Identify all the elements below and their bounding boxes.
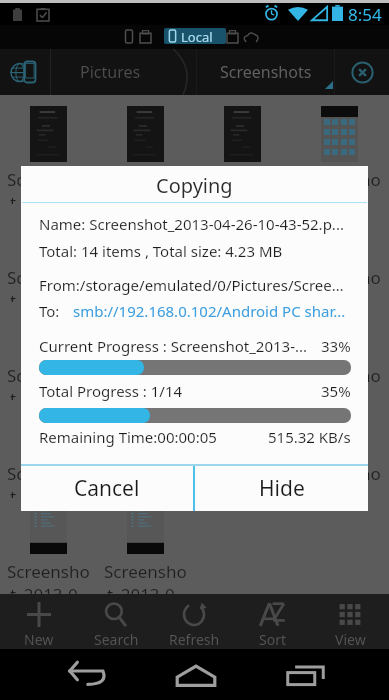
staticText: Screensho xyxy=(7,168,90,191)
button[interactable]: Screensho xyxy=(194,106,291,204)
staticText: t_2013-0.. xyxy=(301,387,378,400)
button[interactable]: Network devices xyxy=(0,49,50,95)
staticText: Screensho xyxy=(7,266,90,289)
staticText: Sort xyxy=(259,630,286,649)
staticText: Pictures xyxy=(80,61,141,83)
staticText: t_2013-0.. xyxy=(10,191,87,204)
button[interactable]: Recent apps xyxy=(281,654,330,696)
staticText: t_2013-0.. xyxy=(107,485,184,498)
button[interactable]: Screensho xyxy=(97,204,194,302)
staticText: Screensho xyxy=(104,168,187,191)
button[interactable]: Screensho xyxy=(291,302,388,400)
button[interactable]: Screensho xyxy=(0,204,97,302)
staticText: Search xyxy=(94,630,139,649)
staticText: Screensho xyxy=(298,266,381,289)
staticText: Hide xyxy=(259,474,305,503)
button[interactable]: Cloud xyxy=(243,32,259,42)
staticText: Screensho xyxy=(7,560,90,583)
staticText: Screensho xyxy=(104,364,187,387)
button[interactable]: Screensho xyxy=(194,302,291,400)
staticText: t_2013-0.. xyxy=(10,485,87,498)
staticText: Refresh xyxy=(169,630,220,649)
button[interactable]: Screensho xyxy=(97,106,194,204)
button[interactable]: Search xyxy=(77,594,155,649)
button[interactable]: Screensho xyxy=(97,302,194,400)
staticText: 33% xyxy=(321,336,351,356)
staticText: 35% xyxy=(321,381,351,401)
button[interactable]: Screensho xyxy=(194,400,291,498)
staticText: Screensho xyxy=(298,168,381,191)
staticText: t_2013-0.. xyxy=(301,485,378,498)
button[interactable]: Screenshots xyxy=(197,49,334,95)
button[interactable]: View xyxy=(311,594,389,649)
staticText: Copying xyxy=(156,172,233,199)
button[interactable]: Close xyxy=(335,49,389,95)
button[interactable]: Sort xyxy=(233,594,311,649)
staticText: t_2013-0.. xyxy=(301,191,378,204)
button[interactable]: Screensho xyxy=(291,204,388,302)
staticText: Name: Screenshot_2013-04-26-10-43-52.p..… xyxy=(39,214,351,234)
staticText: To: xyxy=(39,301,60,321)
button[interactable]: Screensho xyxy=(97,400,194,498)
staticText: New xyxy=(24,630,54,649)
button[interactable]: Screensho xyxy=(291,106,388,204)
button[interactable]: Screensho xyxy=(291,400,388,498)
staticText: t_2013-0.. xyxy=(107,191,184,204)
staticText: From:/storage/emulated/0/Pictures/Screen… xyxy=(39,275,351,295)
staticText: Screensho xyxy=(201,168,284,191)
staticText: t_2013-0.. xyxy=(301,289,378,302)
staticText: Screensho xyxy=(298,462,381,485)
staticText: Screensho xyxy=(201,266,284,289)
staticText: Total Progress : 1/14 xyxy=(39,381,321,401)
staticText: Screenshots xyxy=(220,61,312,83)
staticText: Screensho xyxy=(104,266,187,289)
button[interactable]: Back xyxy=(61,654,110,696)
staticText: Screensho xyxy=(298,364,381,387)
button[interactable]: Pictures xyxy=(51,49,170,95)
staticText: t_2013-0.. xyxy=(107,387,184,400)
staticText: 8:54 xyxy=(348,3,382,26)
button[interactable]: SD card xyxy=(140,30,151,43)
button[interactable]: Cancel xyxy=(21,466,193,511)
staticText: t_2013-0.. xyxy=(107,289,184,302)
staticText: View xyxy=(335,630,366,649)
staticText: t_2013-0.. xyxy=(204,289,281,302)
button[interactable]: Screensho xyxy=(194,204,291,302)
button[interactable]: New xyxy=(0,594,77,649)
staticText: smb://192.168.0.102/Android PC shar... xyxy=(73,301,351,321)
staticText: Screensho xyxy=(104,462,187,485)
staticText: t_2013-0.. xyxy=(10,387,87,400)
staticText: t_2013-0.. xyxy=(204,485,281,498)
button[interactable]: Screensho xyxy=(97,498,194,594)
button[interactable]: Hide xyxy=(195,466,368,511)
button[interactable]: Local xyxy=(164,28,226,44)
button[interactable]: Phone storage xyxy=(124,30,134,43)
staticText: Cancel xyxy=(74,474,140,503)
staticText: Screensho xyxy=(7,462,90,485)
staticText: Screensho xyxy=(201,462,284,485)
staticText: t_2013-0.. xyxy=(107,583,184,594)
staticText: t_2013-0.. xyxy=(10,289,87,302)
button[interactable]: Screensho xyxy=(0,400,97,498)
button[interactable]: Network xyxy=(227,30,238,43)
staticText: Remaining Time:00:00:05 xyxy=(39,427,268,447)
staticText: Local xyxy=(181,28,213,44)
staticText: t_2013-0.. xyxy=(10,583,87,594)
staticText: Total: 14 items , Total size: 4.23 MB xyxy=(39,241,283,261)
button[interactable]: Home xyxy=(171,654,220,696)
staticText: Screensho xyxy=(201,364,284,387)
button[interactable]: Screensho xyxy=(0,106,97,204)
button[interactable]: Screensho xyxy=(0,498,97,594)
staticText: Screensho xyxy=(7,364,90,387)
button[interactable]: Screensho xyxy=(0,302,97,400)
button[interactable]: Refresh xyxy=(155,594,233,649)
staticText: 515.32 KB/s xyxy=(268,427,351,447)
staticText: t_2013-0.. xyxy=(204,191,281,204)
staticText: Screensho xyxy=(104,560,187,583)
staticText: Current Progress : Screenshot_2013-... xyxy=(39,336,317,356)
